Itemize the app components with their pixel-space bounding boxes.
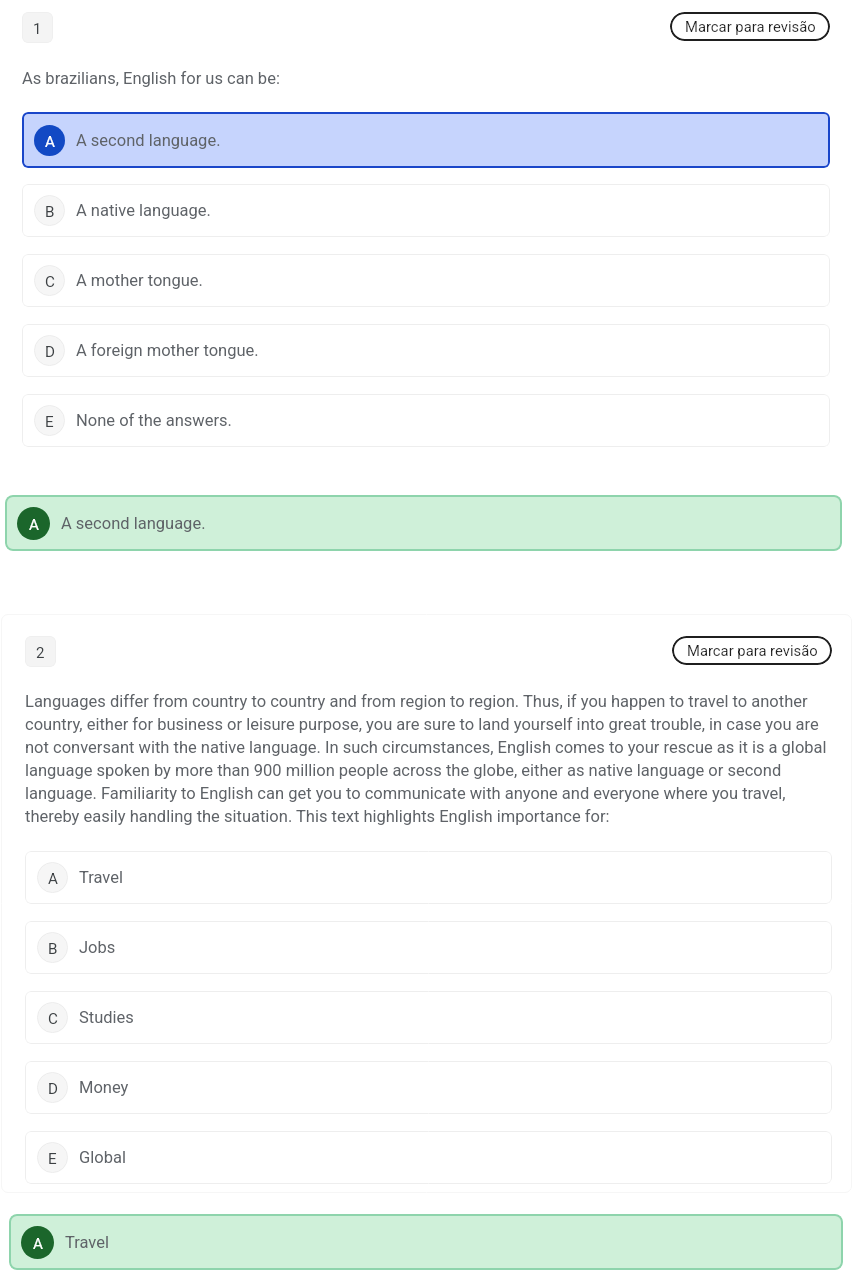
staticText: None of the answers. [76, 411, 232, 430]
button[interactable]: B [25, 921, 832, 974]
staticText: A second language. [61, 514, 206, 533]
button[interactable]: Marcar para revisão [670, 12, 830, 41]
staticText: Jobs [79, 938, 116, 957]
button[interactable]: Marcar para revisão [672, 636, 832, 665]
staticText: A [45, 133, 55, 151]
staticText: Travel [65, 1233, 110, 1252]
button[interactable]: D [22, 324, 830, 377]
staticText: Global [79, 1148, 126, 1167]
button[interactable]: Question 1 [22, 12, 53, 43]
staticText: E [45, 413, 54, 431]
button[interactable]: B [22, 184, 830, 237]
button[interactable]: A [25, 851, 832, 904]
button[interactable]: A [5, 495, 842, 551]
staticText: D [48, 1080, 58, 1098]
button[interactable]: C [22, 254, 830, 307]
staticText: Marcar para revisão [687, 642, 818, 659]
button[interactable]: C [25, 991, 832, 1044]
staticText: C [45, 273, 55, 291]
staticText: A second language. [76, 131, 221, 150]
staticText: B [45, 203, 55, 221]
staticText: Studies [79, 1008, 134, 1027]
staticText: A [33, 1235, 43, 1253]
staticText: D [45, 343, 55, 361]
staticText: Languages differ from country to country… [25, 692, 827, 826]
staticText: A [48, 870, 58, 888]
staticText: Marcar para revisão [685, 18, 816, 35]
staticText: C [48, 1010, 58, 1028]
button[interactable]: D [25, 1061, 832, 1114]
staticText: B [48, 940, 58, 958]
staticText: 1 [33, 20, 42, 38]
button[interactable]: E [22, 394, 830, 447]
button[interactable]: A [22, 112, 830, 168]
staticText: 2 [36, 644, 45, 662]
staticText: E [48, 1150, 57, 1168]
staticText: Money [79, 1078, 129, 1097]
staticText: A native language. [76, 201, 211, 220]
staticText: A foreign mother tongue. [76, 341, 259, 360]
staticText: A mother tongue. [76, 271, 203, 290]
button[interactable]: Question 2 [25, 636, 56, 667]
button[interactable]: E [25, 1131, 832, 1184]
staticText: Travel [79, 868, 124, 887]
staticText: As brazilians, English for us can be: [22, 69, 280, 88]
button[interactable]: A [9, 1214, 843, 1270]
staticText: A [29, 516, 39, 534]
